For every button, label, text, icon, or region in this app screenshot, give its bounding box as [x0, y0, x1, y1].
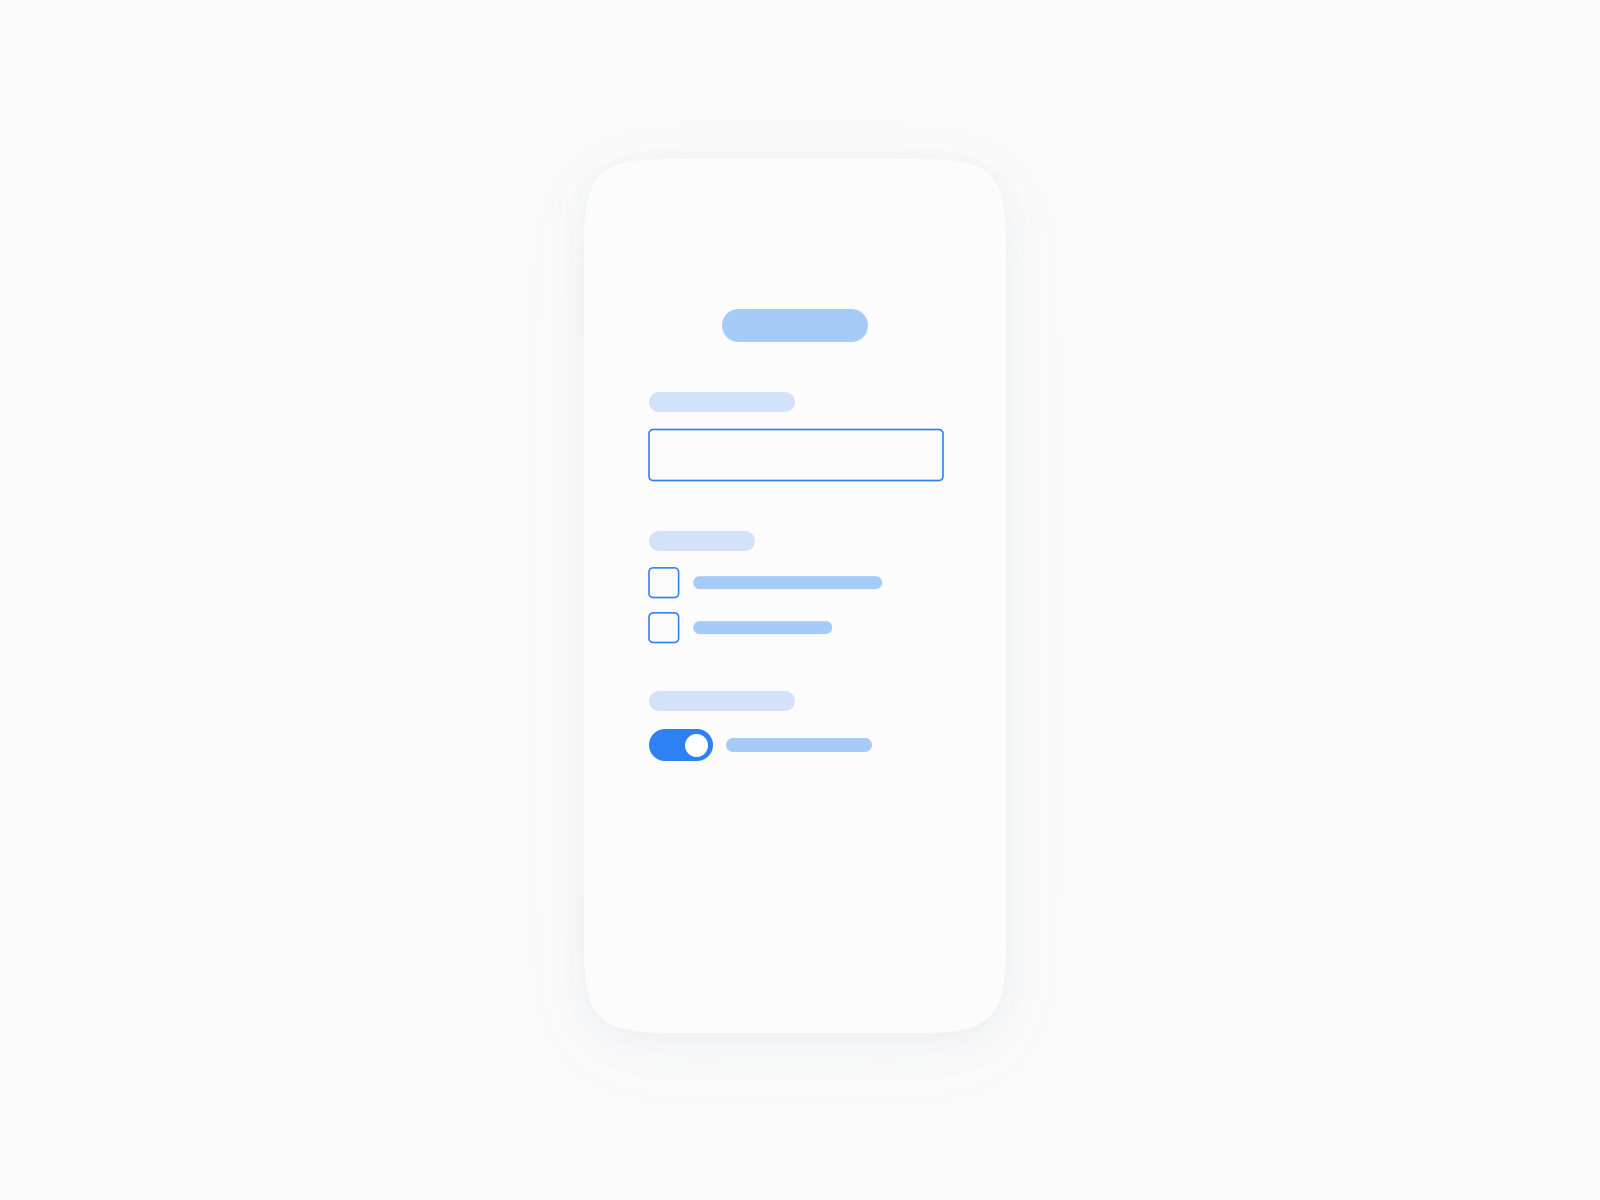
- button[interactable]: Checkbox option: [649, 568, 882, 599]
- button[interactable]: Text field: [649, 429, 943, 480]
- button[interactable]: Checkbox option: [649, 613, 832, 644]
- button[interactable]: Toggle, on: [649, 729, 713, 761]
